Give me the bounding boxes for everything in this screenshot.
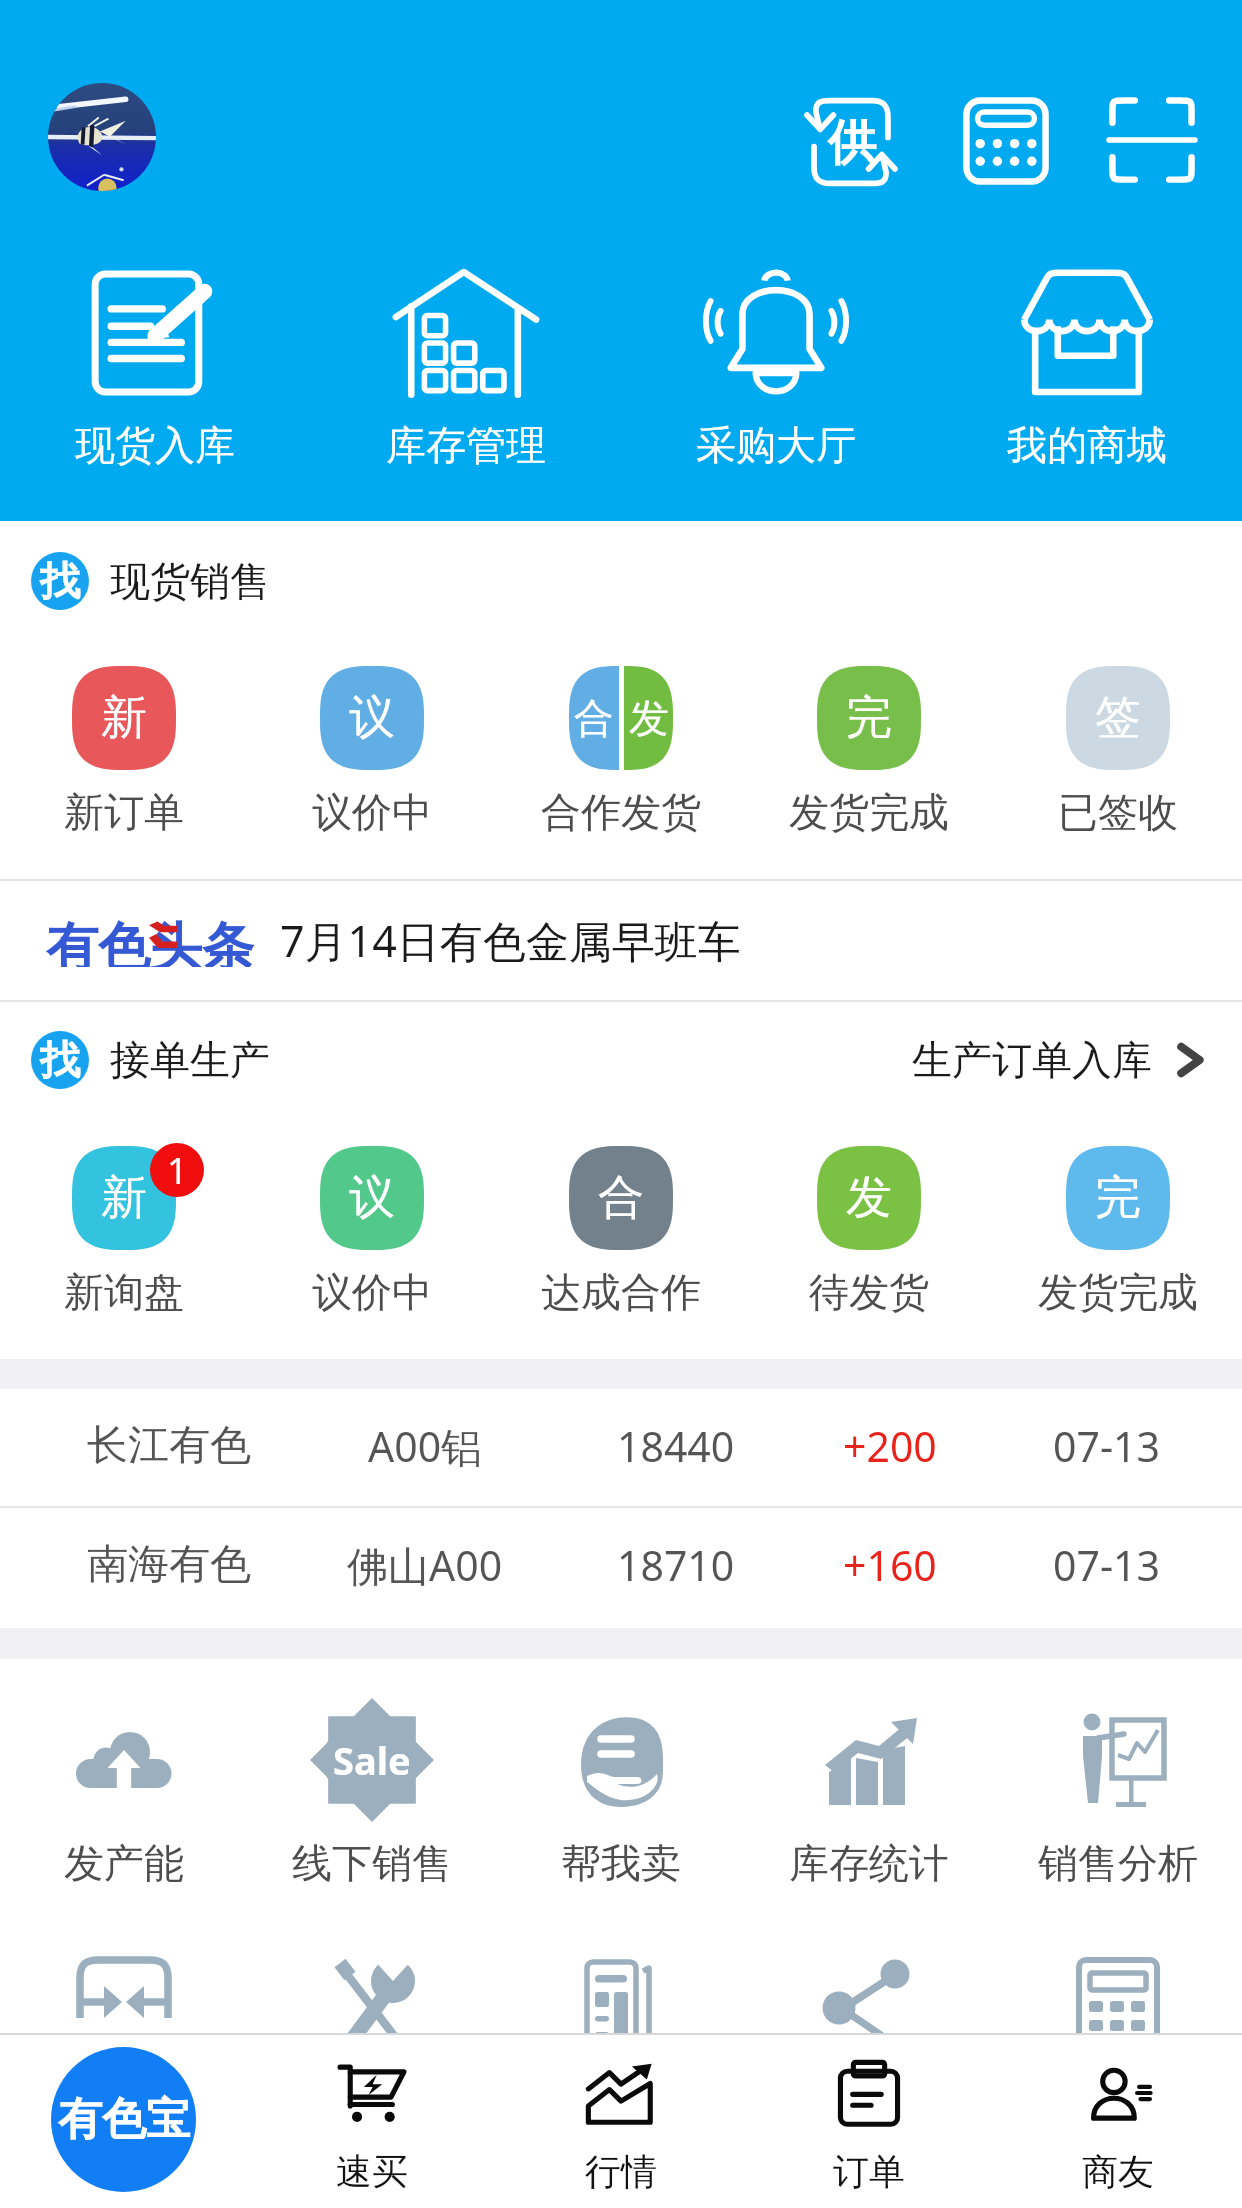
staticText: 南海有色 — [87, 1539, 251, 1591]
staticText: 生产订单入库 — [912, 1035, 1152, 1085]
staticText: 有色宝 — [58, 2092, 190, 2147]
button[interactable]: 生产订单入库 — [912, 1035, 1212, 1085]
button[interactable]: 合 — [497, 1141, 745, 1317]
button[interactable]: 采购大厅 — [636, 266, 916, 470]
button[interactable]: Calculator — [950, 85, 1062, 197]
button[interactable]: 有色头条 — [0, 881, 1242, 1000]
button[interactable]: Tool — [497, 1950, 745, 2050]
staticText: 接单生产 — [110, 1035, 270, 1085]
button[interactable]: 库存统计 — [745, 1710, 993, 1888]
staticText: 完 — [1095, 1169, 1141, 1227]
staticText: 商友 — [1082, 2149, 1154, 2194]
button[interactable]: 库存管理 — [326, 266, 606, 470]
staticText: 7月14日有色金属早班车 — [280, 911, 741, 970]
staticText: 签 — [1095, 689, 1141, 747]
button[interactable]: Scan — [1096, 84, 1208, 196]
button[interactable]: 速买 — [248, 2033, 496, 2208]
button[interactable]: 发产能 — [0, 1710, 248, 1888]
staticText: 长江有色 — [87, 1420, 251, 1472]
button[interactable]: Tool — [0, 1950, 248, 2050]
staticText: 帮我卖 — [561, 1838, 681, 1888]
staticText: 新订单 — [64, 787, 184, 837]
staticText: 订单 — [833, 2149, 905, 2194]
staticText: A00铝 — [368, 1418, 483, 1474]
staticText: Sale — [333, 1734, 411, 1786]
staticText: 18440 — [617, 1418, 735, 1474]
staticText: +160 — [843, 1537, 937, 1593]
button[interactable]: 完 — [994, 1141, 1242, 1317]
button[interactable]: 南海有色 — [0, 1508, 1242, 1622]
staticText: 发 — [629, 693, 669, 743]
button[interactable]: Tool — [994, 1950, 1242, 2050]
staticText: 已签收 — [1058, 787, 1178, 837]
staticText: 合作发货 — [541, 787, 701, 837]
staticText: 我的商城 — [1007, 420, 1167, 470]
staticText: 采购大厅 — [696, 420, 856, 470]
button[interactable]: Profile — [48, 83, 156, 191]
button[interactable]: 议 — [248, 1141, 496, 1317]
staticText: 发产能 — [64, 1838, 184, 1888]
staticText: 供 — [828, 113, 876, 173]
button[interactable]: 完 — [745, 661, 993, 837]
button[interactable]: 行情 — [497, 2033, 745, 2208]
button[interactable]: 帮我卖 — [497, 1710, 745, 1888]
staticText: 有色头条 — [46, 915, 254, 967]
staticText: 发货完成 — [1038, 1267, 1198, 1317]
button[interactable]: 新 — [0, 661, 248, 837]
staticText: 18710 — [617, 1537, 735, 1593]
staticText: 发 — [846, 1169, 892, 1227]
button[interactable]: 新 — [0, 1141, 248, 1317]
staticText: 议价中 — [312, 787, 432, 837]
staticText: 07-13 — [1053, 1537, 1161, 1593]
staticText: 达成合作 — [541, 1267, 701, 1317]
staticText: 合 — [598, 1169, 644, 1227]
staticText: 速买 — [336, 2149, 408, 2194]
button[interactable]: 我的商城 — [947, 266, 1227, 470]
button[interactable]: 商友 — [994, 2033, 1242, 2208]
staticText: 发货完成 — [789, 787, 949, 837]
staticText: 线下销售 — [292, 1838, 452, 1888]
button[interactable]: 现货入库 — [15, 266, 295, 470]
staticText: 议 — [349, 1169, 395, 1227]
button[interactable]: Supply — [795, 86, 907, 198]
staticText: 找 — [40, 1035, 80, 1085]
staticText: 佛山A00 — [347, 1537, 503, 1593]
staticText: 07-13 — [1053, 1418, 1161, 1474]
staticText: 新询盘 — [64, 1267, 184, 1317]
button[interactable]: 发 — [745, 1141, 993, 1317]
button[interactable]: 议 — [248, 661, 496, 837]
staticText: 库存统计 — [789, 1838, 949, 1888]
button[interactable]: 合 — [497, 661, 745, 837]
button[interactable]: Tool — [745, 1950, 993, 2050]
staticText: 合 — [574, 693, 614, 743]
button[interactable]: 签 — [994, 661, 1242, 837]
button[interactable]: Tool — [248, 1950, 496, 2050]
staticText: 找 — [40, 556, 80, 606]
staticText: 新 — [101, 1169, 147, 1227]
staticText: 议价中 — [312, 1267, 432, 1317]
button[interactable]: 有色宝 — [51, 2047, 196, 2192]
staticText: 议 — [349, 689, 395, 747]
staticText: 待发货 — [809, 1267, 929, 1317]
staticText: 销售分析 — [1038, 1838, 1198, 1888]
staticText: 现货销售 — [110, 556, 270, 606]
staticText: 完 — [846, 689, 892, 747]
staticText: 行情 — [585, 2149, 657, 2194]
staticText: +200 — [843, 1418, 937, 1474]
button[interactable]: 长江有色 — [0, 1389, 1242, 1503]
staticText: 现货入库 — [75, 420, 235, 470]
staticText: 库存管理 — [386, 420, 546, 470]
button[interactable]: 销售分析 — [994, 1710, 1242, 1888]
button[interactable]: 订单 — [745, 2033, 993, 2208]
staticText: 1 — [167, 1146, 188, 1195]
staticText: 新 — [101, 689, 147, 747]
button[interactable]: 线下销售 — [248, 1710, 496, 1888]
